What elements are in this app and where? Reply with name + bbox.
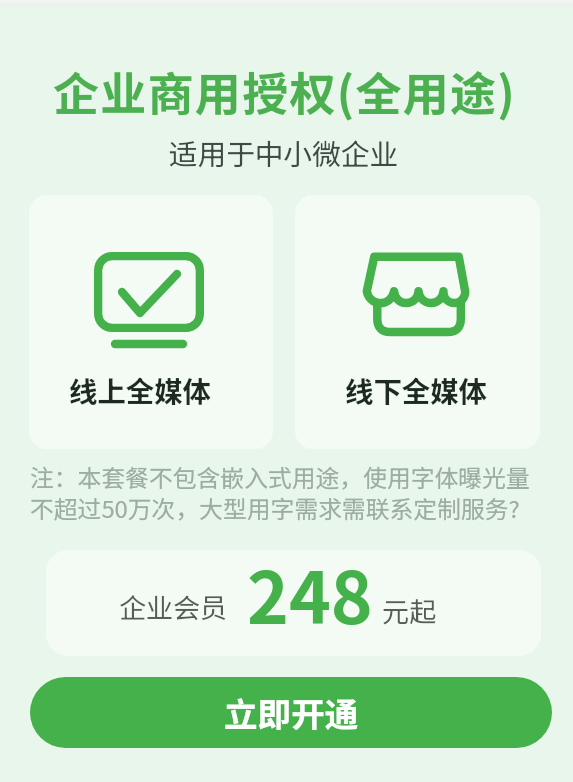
other: 线下全媒体: [362, 252, 471, 342]
staticText: 248: [247, 550, 373, 645]
staticText: 线上全媒体: [69, 369, 211, 410]
staticText: 元起: [382, 591, 436, 630]
staticText: 企业商用授权(全用途): [0, 58, 571, 125]
staticText: 注：本套餐不包含嵌入式用途，使用字体曝光量不超过50万次，大型用字需求需联系定制…: [30, 459, 531, 525]
staticText: 适用于中小微企业: [0, 132, 570, 174]
button[interactable]: 立即开通: [30, 677, 552, 748]
staticText: 企业会员: [119, 587, 227, 626]
staticText: 线下全媒体: [345, 369, 487, 410]
button[interactable]: 企业会员: [46, 550, 541, 656]
button[interactable]: 线下全媒体: [295, 195, 540, 449]
button[interactable]: 线上全媒体: [29, 195, 273, 449]
other: 线上全媒体: [94, 252, 204, 351]
staticText: 立即开通: [224, 688, 359, 737]
